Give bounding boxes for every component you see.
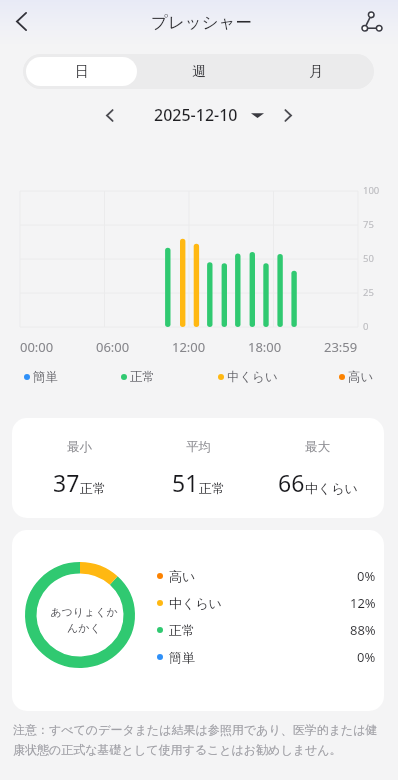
button[interactable]: Previous day (93, 99, 125, 131)
staticText: 注意：すべてのデータまたは結果は参照用であり、医学的または健康状態の正式な基礎と… (13, 722, 379, 757)
button[interactable]: 中くらい (157, 589, 376, 616)
staticText: 0% (357, 567, 376, 585)
staticText: 週 (192, 63, 206, 81)
staticText: 18:00 (248, 338, 282, 356)
staticText: 0 (363, 320, 369, 333)
button[interactable]: 中くらい (218, 369, 278, 385)
button[interactable]: 高い (339, 369, 374, 385)
staticText: プレッシャー (151, 12, 252, 33)
staticText: 12% (350, 594, 376, 612)
staticText: 日 (75, 63, 89, 81)
staticText: 最小 (67, 439, 92, 455)
staticText: 37 (53, 467, 80, 498)
button[interactable]: 正常 (121, 369, 155, 385)
staticText: 25 (363, 286, 374, 299)
staticText: 0% (357, 648, 376, 666)
staticText: 中くらい (227, 369, 278, 385)
staticText: 正常 (169, 622, 195, 638)
staticText: あつりょくかんかく (49, 605, 119, 636)
staticText: 月 (309, 63, 323, 81)
staticText: 正常 (80, 480, 106, 496)
staticText: 簡単 (169, 649, 195, 665)
staticText: 簡単 (33, 369, 58, 385)
staticText: 06:00 (96, 338, 130, 356)
staticText: 00:00 (20, 338, 54, 356)
button[interactable]: 2025-12-10 (154, 99, 264, 131)
button[interactable]: 週 (143, 57, 254, 86)
staticText: 66 (278, 467, 305, 498)
button[interactable]: Share (351, 0, 393, 42)
staticText: 高い (169, 568, 196, 584)
staticText: 50 (363, 252, 374, 265)
staticText: 88% (350, 621, 376, 639)
button[interactable]: Back (0, 0, 42, 42)
staticText: 正常 (199, 480, 225, 496)
staticText: 最大 (305, 439, 330, 455)
staticText: 51 (172, 467, 199, 498)
button[interactable]: 日 (26, 57, 137, 86)
staticText: 23:59 (324, 338, 358, 356)
staticText: 中くらい (305, 480, 358, 496)
staticText: 高い (348, 369, 374, 385)
staticText: 正常 (130, 369, 155, 385)
staticText: 75 (363, 218, 374, 231)
staticText: 2025-12-10 (154, 104, 238, 126)
staticText: 100 (363, 184, 380, 197)
staticText: 平均 (186, 439, 211, 455)
button[interactable]: 簡単 (24, 369, 58, 385)
button[interactable]: 高い (157, 562, 376, 589)
button[interactable]: 正常 (157, 616, 376, 643)
button[interactable]: 月 (260, 57, 371, 86)
button[interactable]: 簡単 (157, 643, 376, 670)
staticText: 中くらい (169, 595, 222, 611)
button[interactable]: Next day (272, 99, 304, 131)
staticText: 12:00 (172, 338, 206, 356)
